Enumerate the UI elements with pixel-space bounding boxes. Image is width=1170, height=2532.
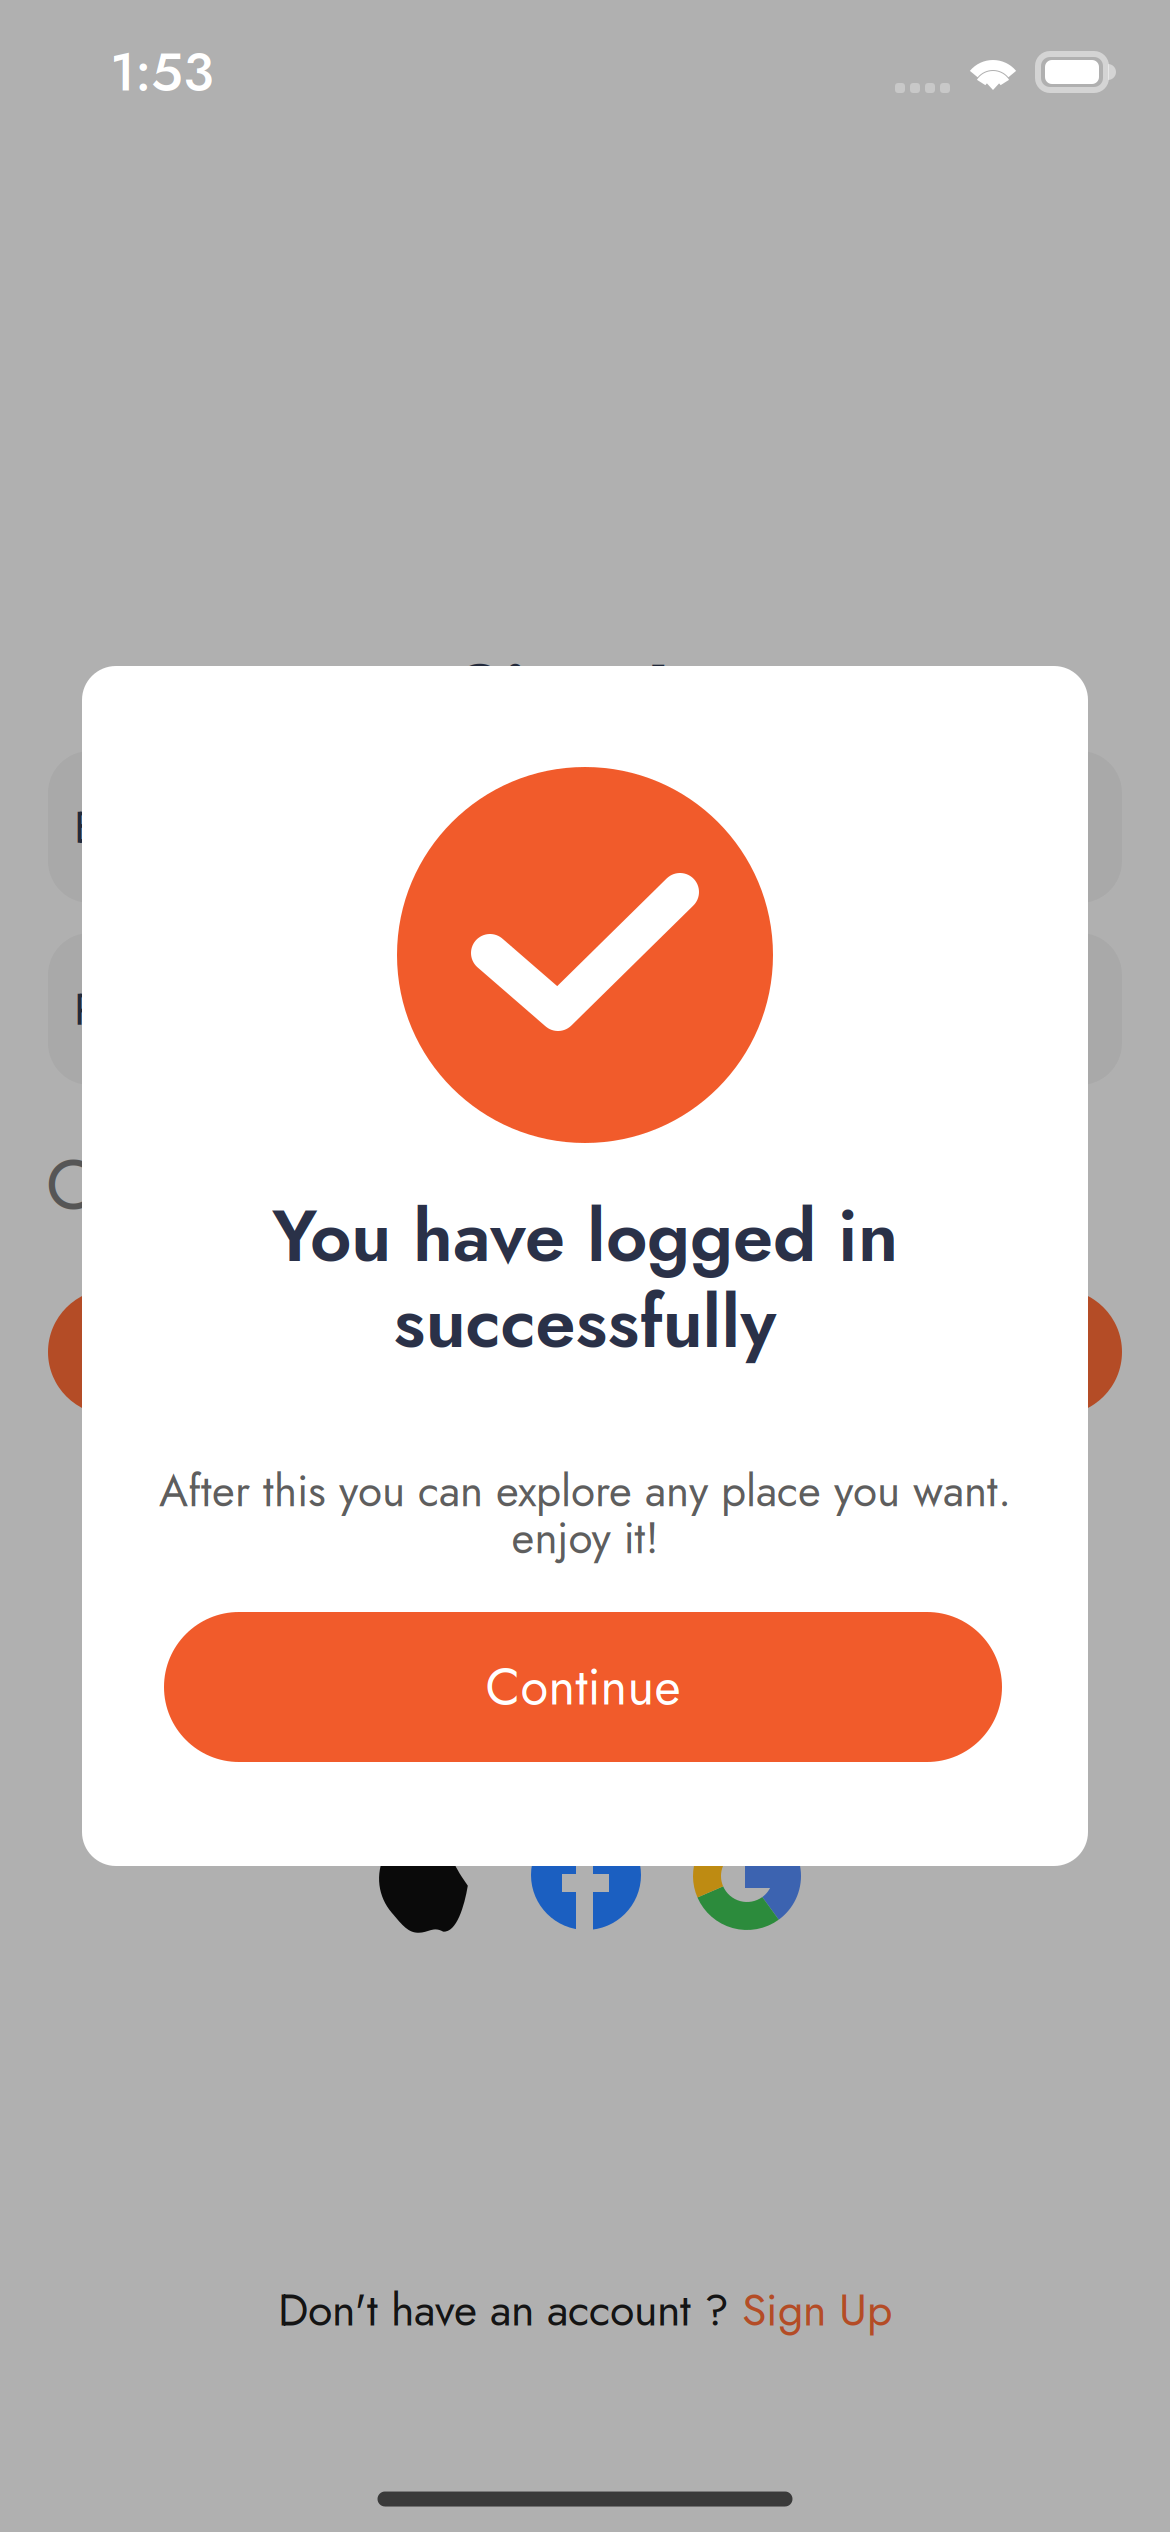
button[interactable]: Sign in with Facebook: [531, 1820, 641, 1930]
staticText: Don't have an account ?: [278, 2278, 742, 2342]
staticText: Sign In: [454, 634, 716, 754]
staticText: enjoy it!: [511, 1506, 658, 1570]
staticText: successfully: [393, 1270, 776, 1374]
button[interactable]: Don't have an account ?: [278, 2278, 892, 2342]
button[interactable]: Password: [48, 933, 1122, 1085]
staticText: Sign Up: [742, 2278, 892, 2342]
button[interactable]: Sign in with Apple: [374, 1821, 472, 1937]
staticText: Create an account: [46, 1135, 575, 1235]
button[interactable]: Create an account: [46, 1135, 1124, 1235]
button[interactable]: Email: [48, 751, 1122, 903]
button[interactable]: Sign in with Google: [693, 1822, 801, 1930]
staticText: After this you can explore any place you…: [159, 1459, 1011, 1523]
button[interactable]: Sign In: [48, 1289, 1122, 1415]
staticText: Password: [74, 976, 252, 1042]
staticText: You have logged in: [272, 1184, 898, 1288]
staticText: Sign In: [509, 1315, 660, 1389]
button[interactable]: Continue: [164, 1612, 1002, 1762]
staticText: 1:53: [110, 33, 214, 111]
staticText: Continue: [485, 1650, 680, 1724]
staticText: Email: [74, 794, 178, 860]
